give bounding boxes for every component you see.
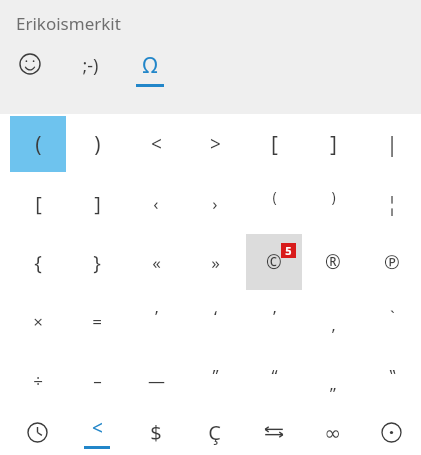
staticText: ›: [212, 192, 218, 215]
staticText: <: [151, 131, 162, 157]
button[interactable]: „: [305, 352, 361, 408]
staticText: ×: [33, 310, 43, 333]
staticText: ’: [155, 305, 158, 328]
staticText: >: [210, 131, 221, 157]
button[interactable]: ’: [128, 293, 184, 349]
button[interactable]: ʼ: [246, 293, 302, 349]
staticText: ”: [212, 364, 219, 387]
button[interactable]: ℗: [364, 234, 420, 290]
staticText: ‘: [214, 305, 217, 328]
button[interactable]: ×: [10, 293, 66, 349]
button[interactable]: ¦: [364, 175, 420, 231]
button[interactable]: –: [69, 352, 125, 408]
staticText: ∞: [324, 421, 341, 444]
button[interactable]: —: [128, 352, 184, 408]
staticText: “: [271, 364, 278, 387]
button[interactable]: =: [69, 293, 125, 349]
button[interactable]: >: [187, 116, 243, 172]
button[interactable]: »: [187, 234, 243, 290]
button[interactable]: «: [128, 234, 184, 290]
staticText: (: [272, 187, 277, 206]
staticText: ‹: [153, 192, 159, 215]
button[interactable]: <: [67, 409, 126, 455]
button[interactable]: ): [305, 175, 361, 231]
staticText: ÷: [33, 369, 43, 392]
button[interactable]: {: [10, 234, 66, 290]
button[interactable]: <: [128, 116, 184, 172]
button[interactable]: ‹: [128, 175, 184, 231]
button[interactable]: ]: [69, 175, 125, 231]
button[interactable]: Ω: [120, 47, 180, 99]
button[interactable]: }: [69, 234, 125, 290]
staticText: ‚: [331, 313, 336, 336]
button[interactable]: ‟: [364, 352, 420, 408]
staticText: „: [329, 372, 337, 395]
staticText: =: [92, 310, 102, 333]
button[interactable]: ÷: [10, 352, 66, 408]
staticText: 5: [285, 243, 292, 258]
staticText: $: [150, 419, 162, 446]
staticText: »: [211, 251, 220, 274]
button[interactable]: ;-): [60, 47, 120, 99]
staticText: Erikoismerkit: [16, 12, 121, 35]
button[interactable]: |: [364, 116, 420, 172]
staticText: `: [390, 305, 395, 328]
staticText: ]: [330, 130, 337, 159]
staticText: Ç: [208, 419, 221, 446]
staticText: ‟: [389, 364, 396, 387]
staticText: ®: [325, 249, 341, 275]
button[interactable]: ›: [187, 175, 243, 231]
staticText: ℗: [384, 249, 400, 275]
staticText: |: [386, 130, 398, 159]
button[interactable]: `: [364, 293, 420, 349]
button[interactable]: [: [246, 116, 302, 172]
button[interactable]: “: [246, 352, 302, 408]
button[interactable]: ‘: [187, 293, 243, 349]
button[interactable]: ∞: [303, 409, 362, 455]
staticText: «: [152, 251, 161, 274]
button[interactable]: (: [10, 116, 66, 172]
button[interactable]: Arrows: [244, 409, 303, 455]
staticText: ʼ: [273, 305, 276, 328]
button[interactable]: ”: [187, 352, 243, 408]
staticText: {: [34, 249, 42, 276]
staticText: Ω: [142, 51, 158, 80]
button[interactable]: Recent: [8, 409, 67, 455]
button[interactable]: ®: [305, 234, 361, 290]
staticText: ¦: [386, 190, 398, 217]
staticText: ;-): [82, 53, 99, 78]
staticText: ): [331, 187, 336, 206]
button[interactable]: ©: [246, 234, 302, 290]
button[interactable]: [: [10, 175, 66, 231]
staticText: ]: [94, 190, 101, 217]
staticText: [: [35, 190, 42, 217]
staticText: ©: [266, 249, 282, 275]
button[interactable]: Emoji: [0, 47, 60, 99]
button[interactable]: Ç: [185, 409, 244, 455]
button[interactable]: ): [69, 116, 125, 172]
button[interactable]: Symbols: [362, 409, 421, 455]
staticText: —: [148, 369, 165, 392]
button[interactable]: ‚: [305, 293, 361, 349]
button[interactable]: (: [246, 175, 302, 231]
staticText: ): [94, 130, 101, 159]
staticText: [: [271, 130, 278, 159]
staticText: }: [93, 249, 101, 276]
button[interactable]: ]: [305, 116, 361, 172]
staticText: (: [35, 130, 42, 159]
staticText: –: [93, 369, 102, 392]
staticText: <: [92, 415, 103, 441]
button[interactable]: $: [126, 409, 185, 455]
